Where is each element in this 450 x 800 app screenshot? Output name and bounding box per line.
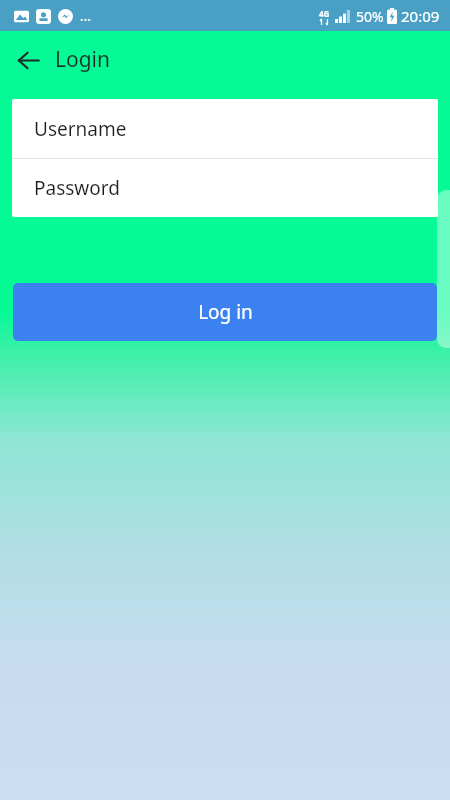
button[interactable]: Password — [12, 159, 438, 217]
button[interactable]: Username — [12, 99, 438, 158]
staticText: Log in — [198, 299, 253, 325]
staticText: ... — [80, 7, 91, 25]
button[interactable]: Back — [6, 38, 50, 82]
staticText: 4G — [319, 8, 330, 19]
staticText: 20:09 — [401, 6, 440, 26]
staticText: 50% — [356, 7, 384, 26]
staticText: Password — [34, 175, 120, 201]
staticText: Username — [34, 116, 127, 142]
button[interactable]: Log in — [13, 283, 437, 341]
staticText: Login — [55, 45, 111, 74]
